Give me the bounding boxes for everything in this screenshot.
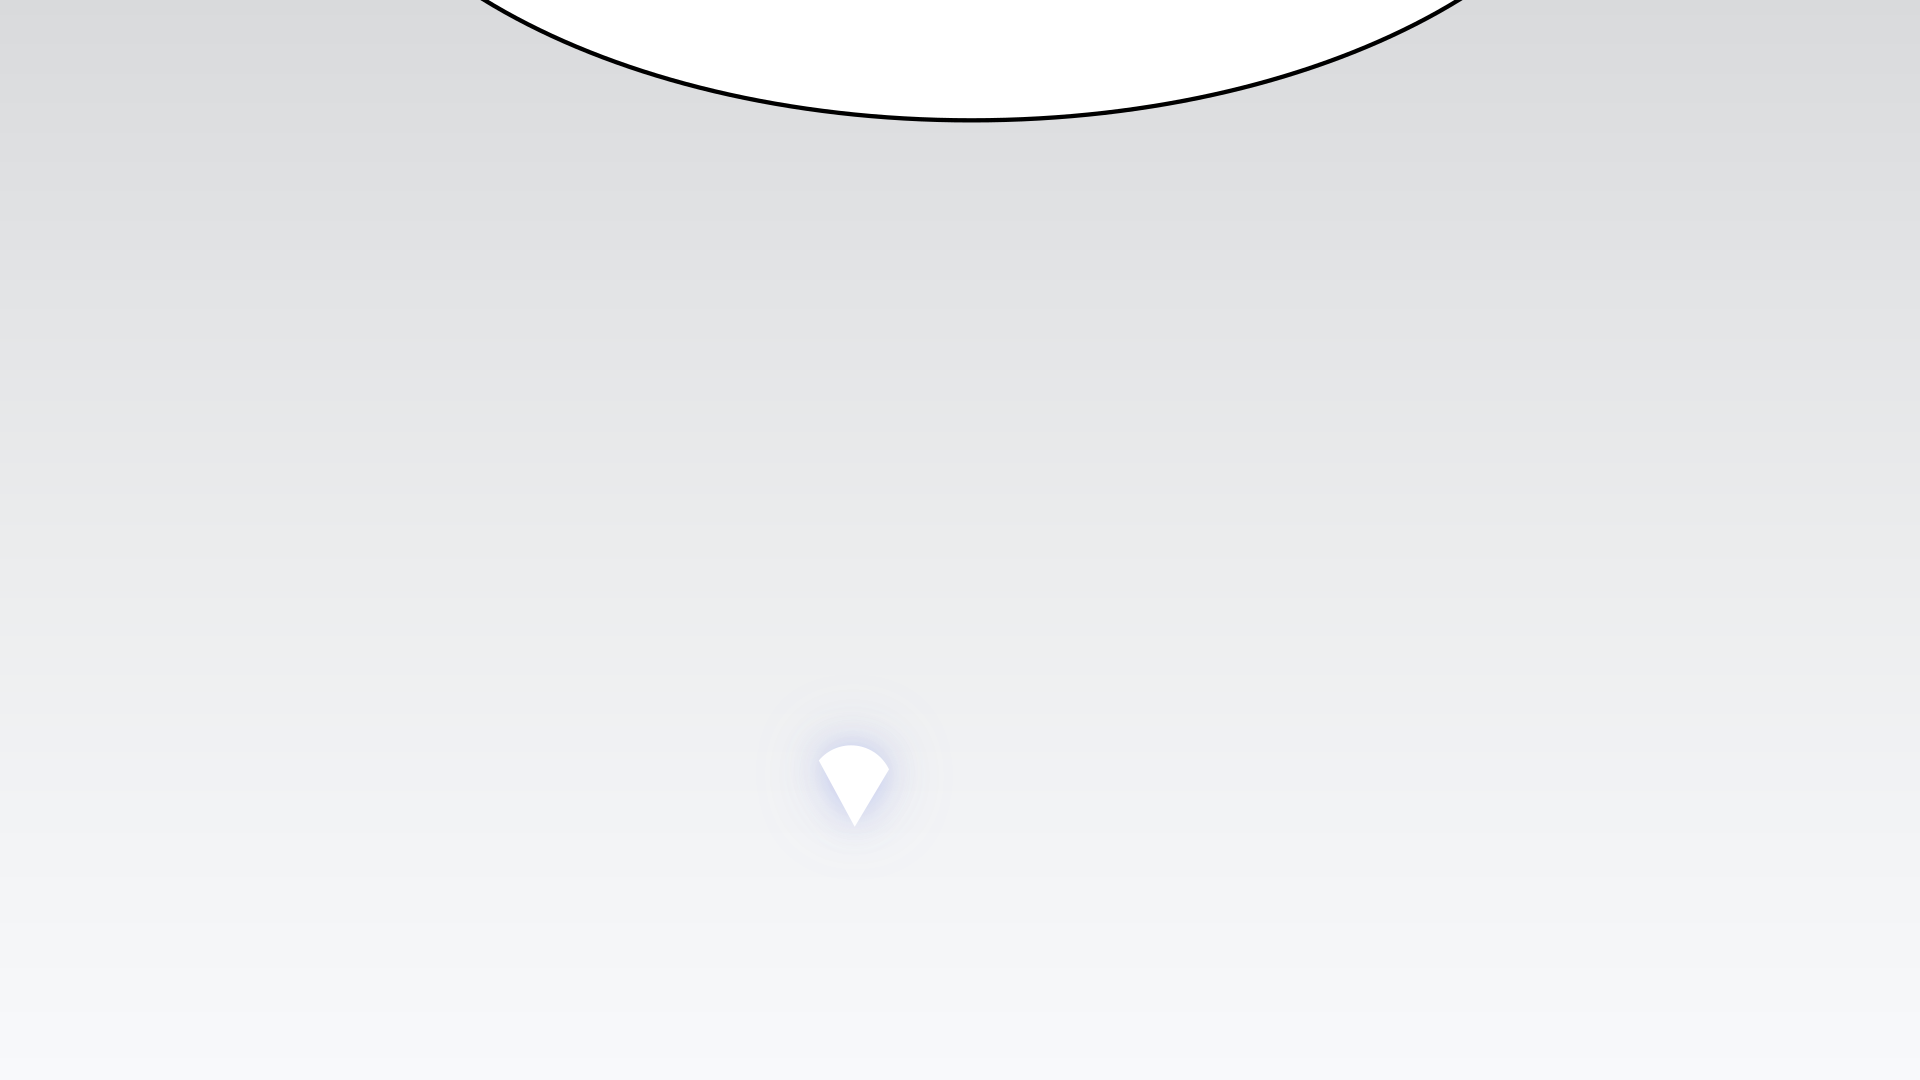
button[interactable]: Current location and heading bbox=[0, 0, 1920, 1080]
